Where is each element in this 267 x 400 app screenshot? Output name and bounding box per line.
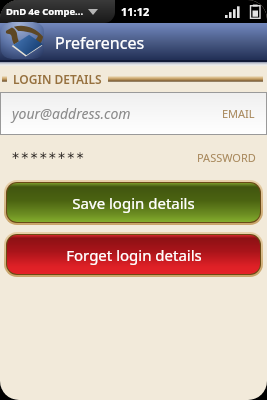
staticText: Save login details	[72, 193, 195, 213]
button[interactable]: DnD 4e Compe...	[0, 0, 115, 23]
staticText: EMAIL	[222, 106, 255, 121]
staticText: ∗∗∗∗∗∗∗∗	[11, 149, 85, 162]
staticText: Forget login details	[66, 245, 202, 265]
staticText: PASSWORD	[197, 150, 256, 165]
button[interactable]: Forget login details	[7, 235, 260, 274]
other: App icon	[1, 22, 44, 59]
button[interactable]: ∗∗∗∗∗∗∗∗	[0, 135, 267, 179]
button[interactable]: Save login details	[7, 183, 260, 222]
staticText: your@address.com	[12, 104, 131, 123]
staticText: Preferences	[55, 32, 145, 54]
staticText: DnD 4e Compe...	[6, 5, 84, 18]
button[interactable]: your@address.com	[1, 93, 266, 134]
staticText: 11:12	[121, 4, 150, 19]
other: Signal and battery	[225, 5, 261, 19]
staticText: LOGIN DETAILS	[13, 71, 102, 87]
